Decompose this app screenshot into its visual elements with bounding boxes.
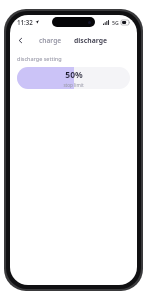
staticText: charge: [39, 36, 62, 45]
button[interactable]: discharge: [70, 34, 112, 47]
button[interactable]: charge: [35, 34, 66, 47]
staticText: discharge setting: [17, 55, 62, 62]
staticText: stop limit: [63, 82, 84, 88]
staticText: 11:32: [17, 18, 33, 26]
button[interactable]: Back: [14, 34, 26, 46]
button[interactable]: 50%: [17, 67, 130, 89]
staticText: 50%: [65, 69, 83, 81]
staticText: 5G: [112, 19, 119, 26]
staticText: discharge: [74, 36, 108, 45]
